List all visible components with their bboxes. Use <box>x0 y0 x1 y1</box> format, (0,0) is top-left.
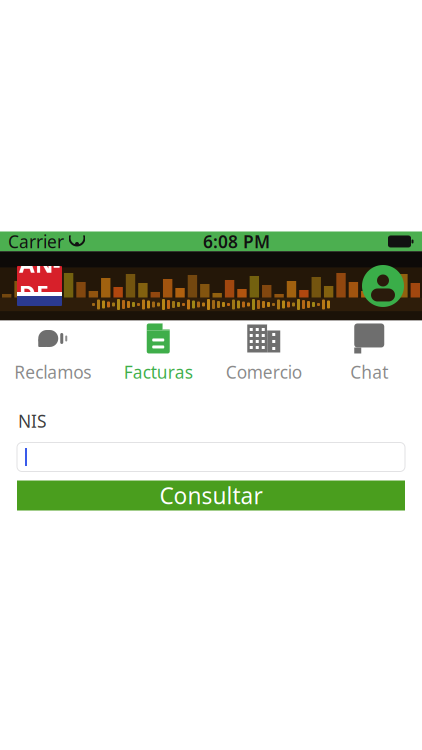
button[interactable]: Reclamos <box>0 314 105 389</box>
button[interactable]: Consultar <box>17 480 405 510</box>
staticText: ANDE <box>19 249 60 309</box>
staticText: Chat <box>350 360 388 383</box>
button[interactable]: Chat <box>316 314 422 389</box>
staticText: 6:08 PM <box>203 230 270 253</box>
button[interactable]: Comercio <box>211 314 316 389</box>
button[interactable]: Facturas <box>105 314 211 389</box>
staticText: Reclamos <box>14 360 91 383</box>
staticText: Comercio <box>226 360 302 383</box>
staticText: Consultar <box>159 480 262 511</box>
button[interactable]: Perfil <box>362 265 404 307</box>
staticText: Facturas <box>124 360 193 383</box>
staticText: Carrier <box>8 230 64 253</box>
staticText: NIS <box>18 409 47 432</box>
